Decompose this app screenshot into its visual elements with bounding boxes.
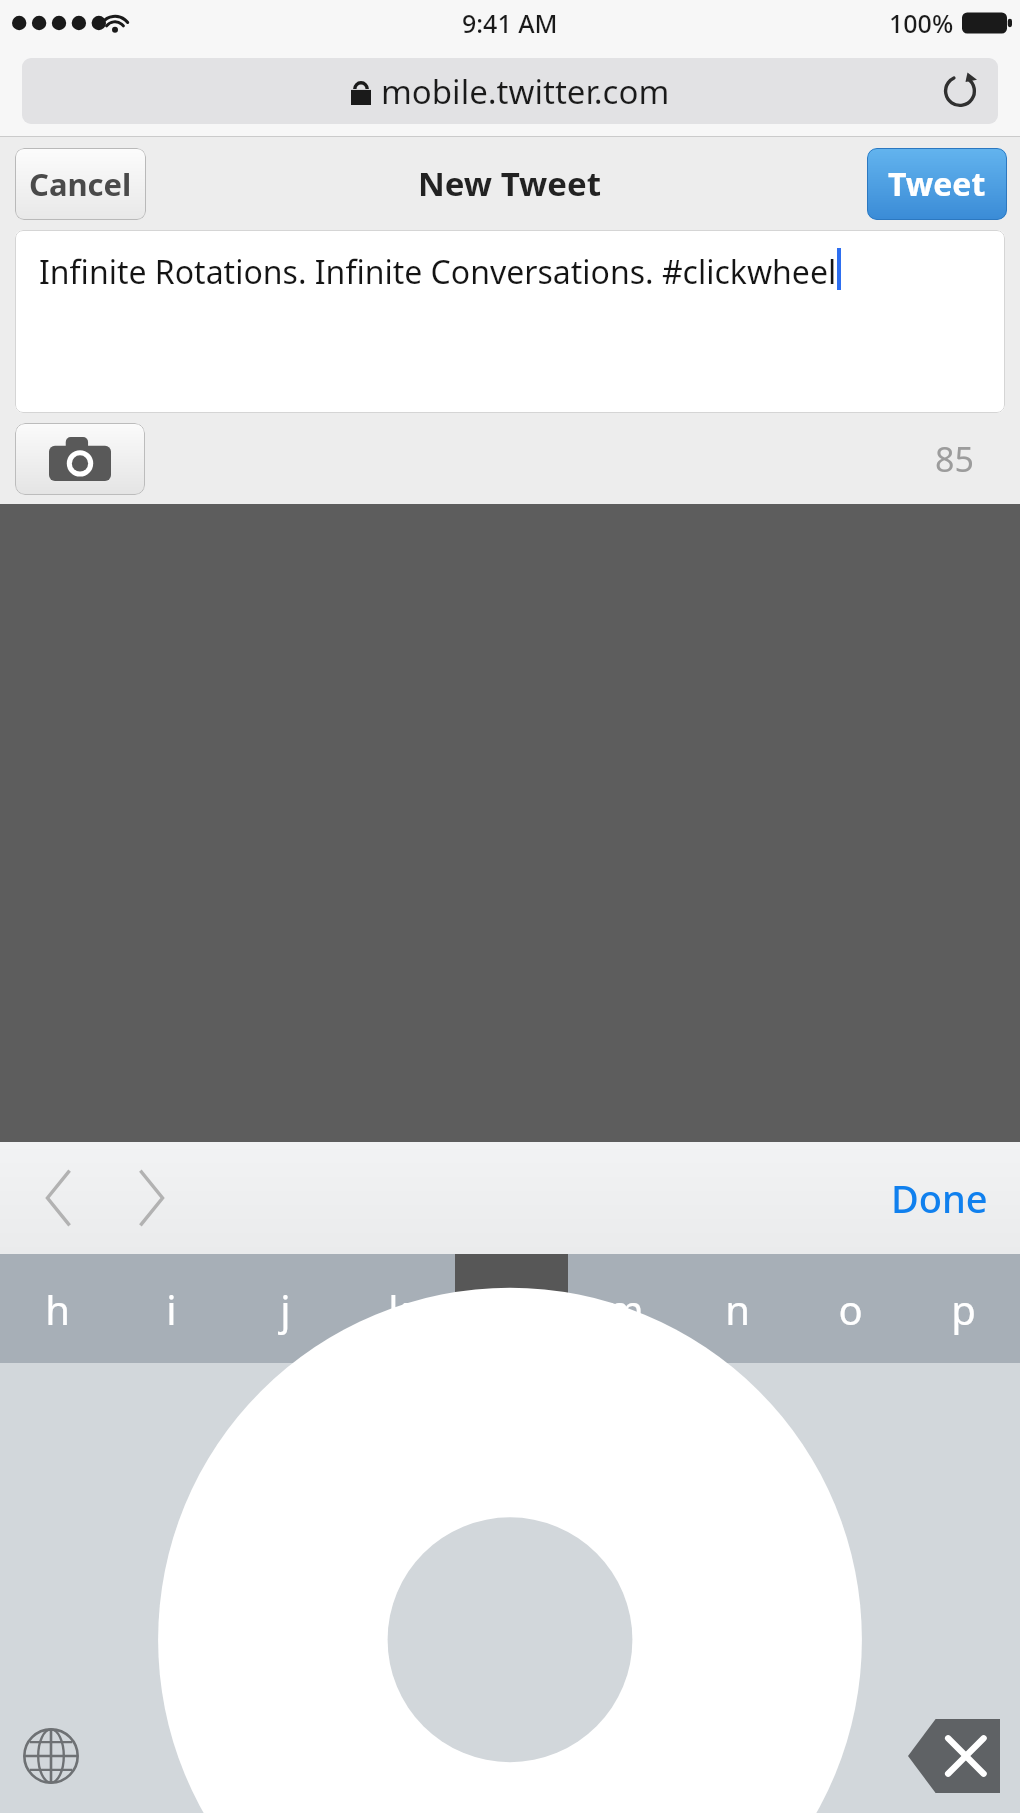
button[interactable]: Change keyboard: [16, 1721, 86, 1791]
button[interactable]: Next field: [120, 1167, 182, 1229]
button[interactable]: k: [342, 1254, 455, 1363]
staticText: n: [725, 1282, 750, 1336]
staticText: 85: [935, 436, 974, 482]
button[interactable]: h: [0, 1254, 114, 1363]
staticText: k: [388, 1282, 410, 1336]
staticText: h: [45, 1282, 70, 1336]
button[interactable]: Done: [891, 1172, 988, 1224]
staticText: Infinite Rotations. Infinite Conversatio…: [39, 250, 837, 294]
button[interactable]: l: [455, 1254, 568, 1363]
button[interactable]: o: [794, 1254, 907, 1363]
staticText: mobile.twitter.com: [381, 69, 670, 114]
button[interactable]: Cancel: [15, 148, 146, 220]
button[interactable]: Infinite Rotations. Infinite Conversatio…: [15, 230, 1005, 413]
staticText: 100%: [889, 6, 954, 40]
button[interactable]: mobile.twitter.com: [22, 58, 998, 124]
staticText: 9:41 AM: [462, 6, 558, 40]
button[interactable]: Reload: [940, 71, 980, 111]
staticText: p: [951, 1282, 976, 1336]
button[interactable]: p: [907, 1254, 1020, 1363]
staticText: l: [506, 1282, 517, 1336]
staticText: Done: [891, 1172, 988, 1224]
button[interactable]: Tweet: [867, 148, 1007, 220]
staticText: Tweet: [888, 162, 986, 206]
staticText: o: [838, 1282, 863, 1336]
staticText: j: [280, 1282, 291, 1336]
button[interactable]: n: [681, 1254, 794, 1363]
button[interactable]: m: [568, 1254, 681, 1363]
button[interactable]: j: [228, 1254, 342, 1363]
staticText: Cancel: [29, 163, 132, 205]
staticText: i: [166, 1282, 177, 1336]
staticText: New Tweet: [418, 161, 602, 206]
button[interactable]: i: [114, 1254, 228, 1363]
staticText: m: [606, 1282, 644, 1336]
button[interactable]: Add photo: [15, 423, 145, 495]
button[interactable]: Previous field: [28, 1167, 90, 1229]
button[interactable]: Delete: [908, 1719, 1000, 1793]
